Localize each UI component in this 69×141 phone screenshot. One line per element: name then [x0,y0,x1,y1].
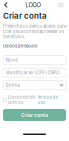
staticText: Li e concordo com os [8,95,36,105]
staticText: Preencha os dados abaixo para criar a su… [3,24,66,39]
staticText: Nome [6,57,19,63]
button[interactable]: Back [3,1,9,9]
staticText: termos de uso [37,95,57,105]
button[interactable]: Toggle [57,2,66,7]
staticText: Criar conta [21,112,48,118]
staticText: Dados pessoais [3,43,37,49]
button[interactable]: Li e concordo com os [0,95,69,105]
staticText: LOGO [25,1,40,9]
staticText: Criar conta [3,11,47,21]
staticText: Identificacao (CPF/CNPJ) [6,70,61,75]
button[interactable]: Criar conta [0,109,69,121]
staticText: Senha [6,82,20,88]
